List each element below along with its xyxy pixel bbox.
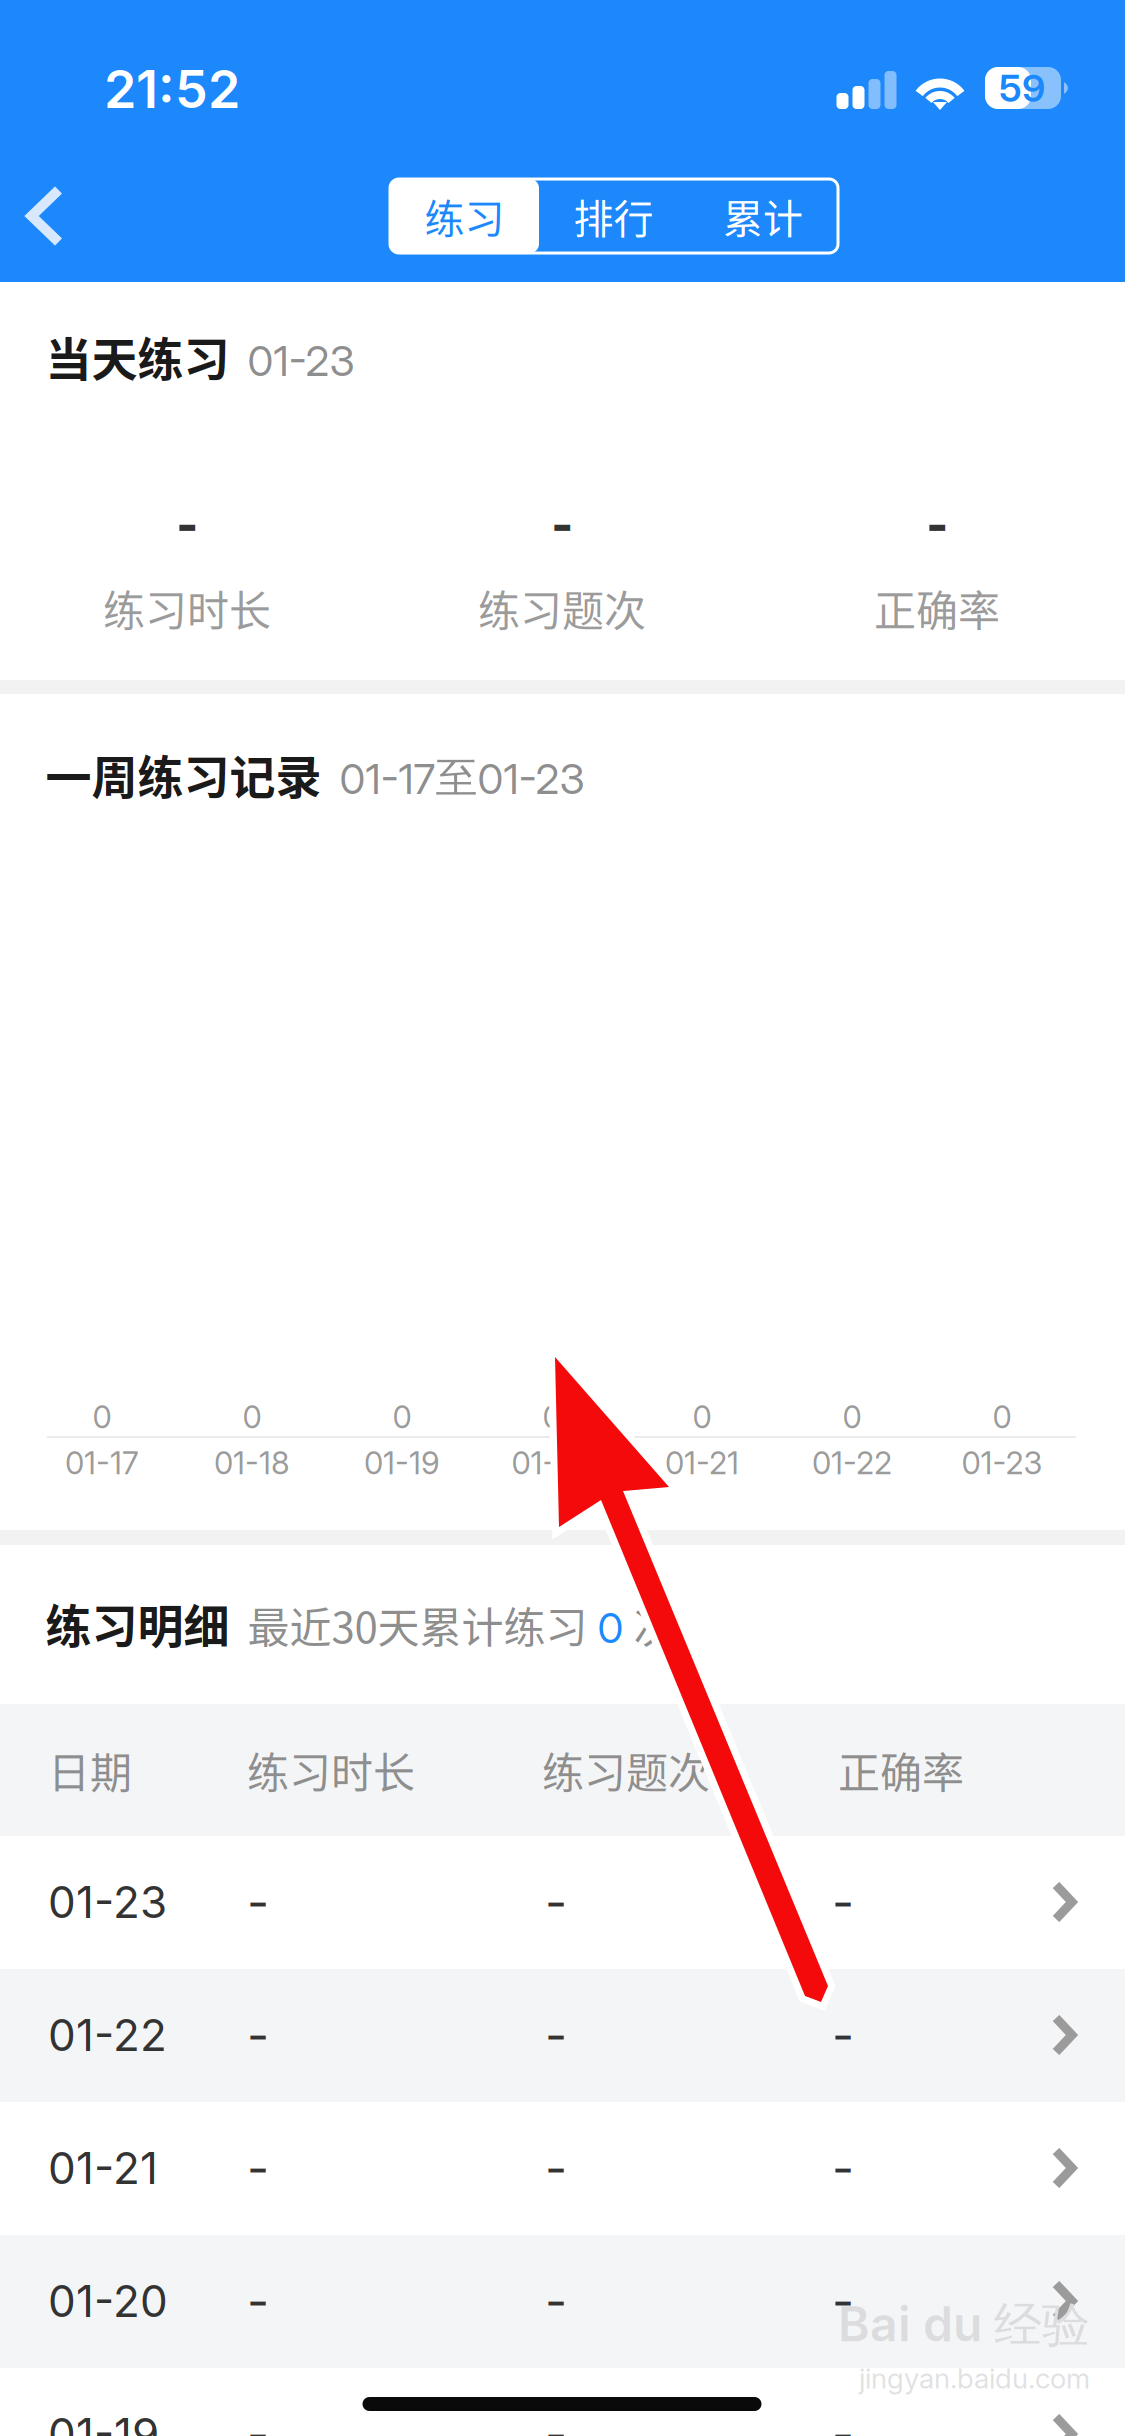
staticText: - xyxy=(545,2006,567,2064)
staticText: 01-19 xyxy=(48,2407,159,2436)
button[interactable]: 练习 xyxy=(390,179,539,253)
staticText: 01-21 xyxy=(665,1444,739,1482)
staticText: - xyxy=(247,1873,269,1931)
staticText: 0 xyxy=(92,1398,111,1436)
staticText: 0 xyxy=(392,1398,411,1436)
button[interactable]: 累计 xyxy=(688,179,838,253)
staticText: - xyxy=(832,2139,854,2197)
staticText: 最近30天累计练习 xyxy=(247,1594,587,1655)
staticText: 01-20 xyxy=(48,2274,168,2328)
staticText: 排行 xyxy=(573,187,653,245)
staticText: - xyxy=(832,2405,854,2436)
staticText: 累计 xyxy=(723,187,803,245)
staticText: - xyxy=(832,2006,854,2064)
staticText: 练习明细 xyxy=(45,1590,229,1656)
staticText: 0 xyxy=(242,1398,261,1436)
staticText: - xyxy=(247,2139,269,2197)
button[interactable]: 01-23 xyxy=(0,1836,1125,1969)
button[interactable]: 01-22 xyxy=(0,1969,1125,2102)
staticText: - xyxy=(545,2272,567,2330)
staticText: 正确率 xyxy=(874,578,1000,638)
staticText: 01-22 xyxy=(48,2008,167,2062)
button[interactable]: 01-19 xyxy=(0,2368,1125,2436)
staticText: - xyxy=(832,1873,854,1931)
staticText: 0 xyxy=(542,1398,561,1436)
staticText: 59 xyxy=(999,65,1045,111)
staticText: 01-23 xyxy=(48,1875,167,1929)
button[interactable]: 排行 xyxy=(539,179,688,253)
staticText: 21:52 xyxy=(104,57,240,120)
staticText: - xyxy=(545,2139,567,2197)
staticText: 正确率 xyxy=(838,1740,964,1800)
staticText: 练习时长 xyxy=(103,578,271,638)
button[interactable]: 01-20 xyxy=(0,2235,1125,2368)
staticText: 一周练习记录 xyxy=(45,741,321,807)
staticText: 01-17 xyxy=(65,1444,139,1482)
staticText: - xyxy=(247,2405,269,2436)
staticText: 01-17至01-23 xyxy=(339,751,584,804)
staticText: 01-21 xyxy=(48,2141,158,2195)
staticText: 练习时长 xyxy=(247,1740,415,1800)
staticText: 次 xyxy=(633,1594,675,1655)
button[interactable]: Back xyxy=(0,161,100,271)
staticText: - xyxy=(176,477,197,561)
button[interactable]: 01-21 xyxy=(0,2102,1125,2235)
staticText: - xyxy=(247,2272,269,2330)
staticText: jingyan.baidu.com xyxy=(859,2361,1090,2395)
staticText: 练习题次 xyxy=(478,578,646,638)
staticText: 01-23 xyxy=(961,1444,1042,1482)
staticText: 练习题次 xyxy=(542,1740,710,1800)
staticText: 0 xyxy=(692,1398,711,1436)
staticText: - xyxy=(545,1873,567,1931)
staticText: Bai du 经验 xyxy=(838,2295,1090,2355)
staticText: 当天练习 xyxy=(45,323,229,389)
staticText: 日期 xyxy=(48,1740,132,1800)
staticText: 练习 xyxy=(424,187,504,245)
staticText: 0 xyxy=(597,1602,623,1653)
staticText: 01-22 xyxy=(812,1444,892,1482)
staticText: 0 xyxy=(842,1398,861,1436)
staticText: 01-18 xyxy=(214,1444,290,1482)
staticText: - xyxy=(551,477,572,561)
staticText: - xyxy=(926,477,947,561)
staticText: 01-19 xyxy=(364,1444,440,1482)
staticText: - xyxy=(545,2405,567,2436)
staticText: 01-20 xyxy=(511,1444,592,1482)
staticText: 01-23 xyxy=(247,335,354,386)
staticText: 0 xyxy=(992,1398,1011,1436)
staticText: - xyxy=(247,2006,269,2064)
staticText: - xyxy=(832,2272,854,2330)
